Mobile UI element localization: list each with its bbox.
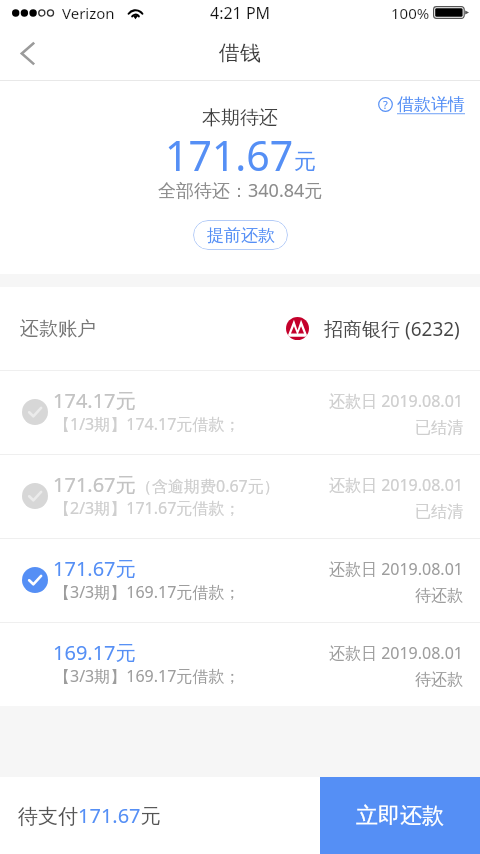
staticText: 171.67 — [165, 127, 294, 183]
button[interactable]: 还款账户 — [0, 287, 480, 370]
staticText: 本期待还 — [202, 106, 278, 130]
staticText: 174.17元 — [53, 387, 136, 414]
staticText: Verizon — [62, 3, 115, 23]
button[interactable]: ? — [378, 94, 465, 115]
staticText: （含逾期费0.67元） — [136, 475, 280, 497]
button[interactable]: 169.17元 — [0, 623, 480, 706]
staticText: 已结清 — [415, 502, 463, 522]
button[interactable]: Back — [0, 25, 54, 81]
staticText: 169.17元 — [53, 639, 136, 666]
button[interactable]: 171.67元 — [0, 539, 480, 622]
staticText: 全部待还：340.84元 — [158, 178, 323, 203]
staticText: 元 — [294, 148, 316, 176]
staticText: 立即还款 — [356, 802, 444, 830]
staticText: 借钱 — [219, 40, 261, 66]
staticText: 【1/3期】174.17元借款； — [54, 413, 241, 435]
staticText: 【3/3期】169.17元借款； — [54, 665, 241, 687]
staticText: 待还款 — [415, 586, 463, 606]
button[interactable]: 立即还款 — [320, 777, 480, 854]
staticText: 171.67元 — [53, 555, 136, 582]
staticText: 还款日 2019.08.01 — [329, 558, 463, 580]
staticText: 还款日 2019.08.01 — [329, 642, 463, 664]
staticText: 已结清 — [415, 418, 463, 438]
staticText: 待还款 — [415, 670, 463, 690]
staticText: 【3/3期】169.17元借款； — [54, 581, 241, 603]
staticText: ? — [383, 97, 388, 112]
button[interactable]: 171.67元 — [0, 455, 480, 538]
staticText: 还款账户 — [20, 317, 96, 341]
staticText: 借款详情 — [397, 94, 465, 115]
staticText: 待支付171.67元 — [18, 802, 161, 829]
staticText: 4:21 PM — [210, 2, 271, 24]
button[interactable]: 174.17元 — [0, 371, 480, 454]
staticText: 171.67元 — [53, 471, 136, 498]
staticText: 提前还款 — [207, 225, 275, 246]
staticText: 【2/3期】171.67元借款； — [54, 497, 241, 519]
staticText: 100% — [391, 3, 430, 23]
staticText: 还款日 2019.08.01 — [329, 474, 463, 496]
button[interactable]: 提前还款 — [193, 220, 288, 250]
staticText: 还款日 2019.08.01 — [329, 390, 463, 412]
staticText: 招商银行 (6232) — [324, 316, 460, 342]
